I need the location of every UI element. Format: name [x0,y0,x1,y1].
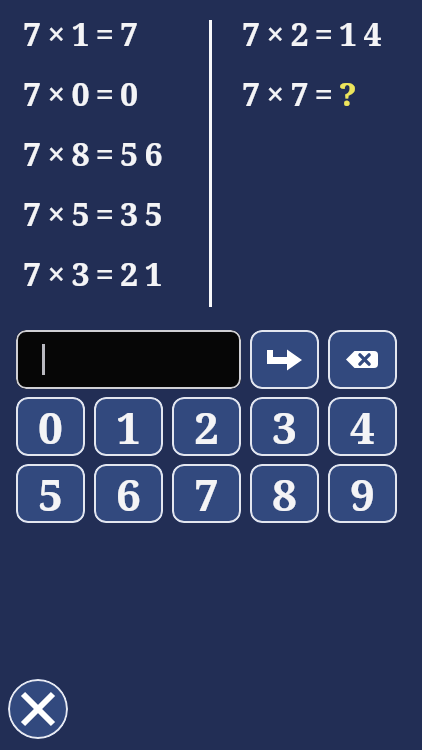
staticText: 7×3=21 [23,252,169,296]
staticText: 3 [272,397,297,456]
staticText: 2 [194,397,219,456]
button[interactable]: 7 [172,464,241,523]
staticText: 0 [38,397,63,456]
staticText: 7×0=0 [23,72,145,116]
staticText: 8 [272,464,297,523]
button[interactable] [328,330,397,389]
button[interactable]: 3 [250,397,319,456]
staticText: 7×7=? [242,72,363,116]
staticText: 4 [350,397,375,456]
staticText: 5 [38,464,63,523]
staticText: 6 [116,464,141,523]
button[interactable]: 2 [172,397,241,456]
staticText: 7×2=14 [242,12,388,56]
button[interactable]: 1 [94,397,163,456]
button[interactable]: 0 [16,397,85,456]
button[interactable] [8,679,68,739]
staticText: 7×5=35 [23,192,169,236]
button[interactable]: 6 [94,464,163,523]
staticText: 1 [116,397,141,456]
button[interactable]: 8 [250,464,319,523]
staticText: 7 [194,464,219,523]
staticText: 7×1=7 [23,12,145,56]
button[interactable]: 4 [328,397,397,456]
button[interactable]: 5 [16,464,85,523]
staticText: 7×8=56 [23,132,169,176]
button[interactable] [16,330,241,389]
staticText: 9 [350,464,375,523]
button[interactable] [250,330,319,389]
button[interactable]: 9 [328,464,397,523]
